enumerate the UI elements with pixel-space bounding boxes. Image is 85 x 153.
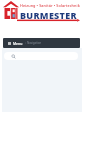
staticText: Navigation [27,41,42,45]
button[interactable] [4,52,78,60]
staticText: BURMESTER [20,9,77,21]
staticText: Heizung • Sanitär • Solartechnik [20,3,80,8]
staticText: › [25,41,26,45]
staticText: Menu [13,41,23,46]
button[interactable]: Open navigation menu [3,38,80,48]
